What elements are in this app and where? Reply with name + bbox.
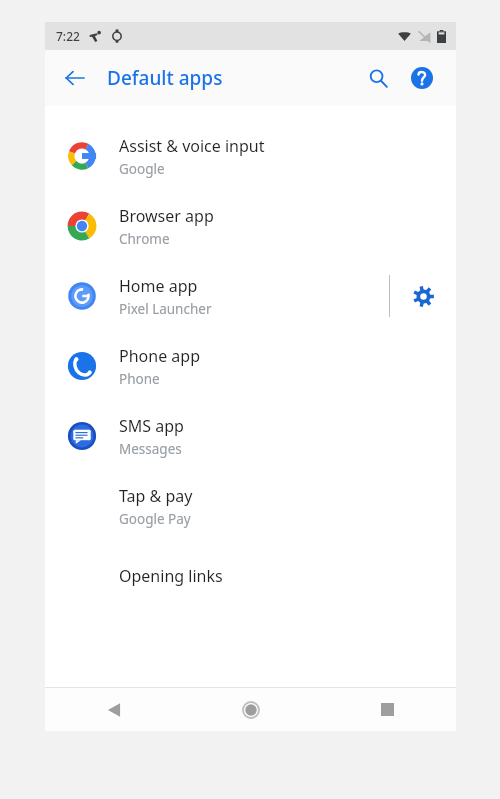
staticText: Opening links xyxy=(119,565,223,587)
staticText: Google Pay xyxy=(119,510,191,528)
staticText: Phone xyxy=(119,370,160,388)
staticText: Phone app xyxy=(119,345,200,367)
staticText: Pixel Launcher xyxy=(119,300,212,318)
button[interactable]: SMS app xyxy=(45,401,456,471)
button[interactable]: Assist & voice input xyxy=(45,121,456,191)
staticText: Messages xyxy=(119,440,182,458)
button[interactable]: Tap & pay xyxy=(45,471,456,541)
button[interactable]: Home xyxy=(182,688,319,731)
staticText: Chrome xyxy=(119,230,170,248)
staticText: Google xyxy=(119,160,165,178)
staticText: Browser app xyxy=(119,205,214,227)
button[interactable]: Opening links xyxy=(45,541,456,611)
staticText: SMS app xyxy=(119,415,184,437)
button[interactable]: Phone app xyxy=(45,331,456,401)
button[interactable]: Back xyxy=(53,56,97,100)
button[interactable]: Browser app xyxy=(45,191,456,261)
staticText: Default apps xyxy=(107,65,223,91)
staticText: Home app xyxy=(119,275,198,297)
button[interactable]: Back xyxy=(45,688,182,731)
staticText: Tap & pay xyxy=(119,485,193,507)
button[interactable]: Recent apps xyxy=(319,688,456,731)
button[interactable]: Help xyxy=(400,56,444,100)
button[interactable]: Home app xyxy=(45,261,456,331)
button[interactable]: Home app settings xyxy=(390,261,456,331)
staticText: 7:22 xyxy=(56,28,80,44)
staticText: Assist & voice input xyxy=(119,135,265,157)
button[interactable]: Search xyxy=(356,56,400,100)
